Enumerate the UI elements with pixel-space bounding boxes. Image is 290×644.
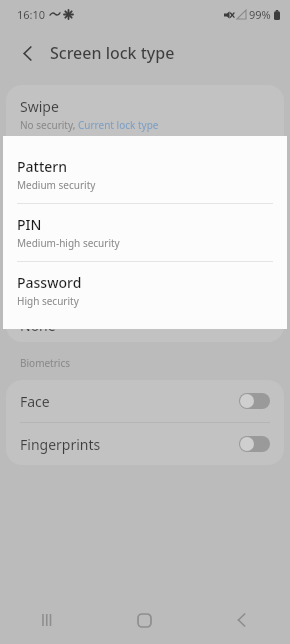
staticText: Face (20, 392, 50, 411)
staticText: Biometrics (20, 356, 71, 370)
button[interactable]: Fingerprints (6, 423, 284, 465)
staticText: PIN (17, 215, 42, 234)
staticText: Screen lock type (50, 42, 175, 64)
staticText: No security, Current lock type (20, 118, 159, 132)
button[interactable]: None (6, 308, 284, 342)
staticText: None (20, 316, 56, 335)
staticText: Medium security (17, 178, 96, 192)
staticText: Pattern (17, 157, 68, 176)
button[interactable]: Swipe (6, 85, 284, 144)
staticText: Swipe (20, 97, 59, 116)
button[interactable]: Face (6, 380, 284, 422)
button[interactable]: Pattern (3, 146, 287, 203)
button[interactable]: Home (96, 596, 193, 644)
staticText: Password (17, 273, 82, 292)
staticText: Medium-high security (17, 236, 120, 250)
staticText: High security (17, 294, 79, 308)
button[interactable]: Recent apps (0, 596, 96, 644)
button[interactable]: PIN (3, 204, 287, 261)
button[interactable]: Password (3, 262, 287, 319)
staticText: 99% (249, 7, 271, 22)
staticText: 16:10 (17, 7, 46, 22)
button[interactable]: Back (14, 39, 42, 67)
button[interactable]: Back (193, 596, 290, 644)
staticText: Fingerprints (20, 435, 101, 454)
